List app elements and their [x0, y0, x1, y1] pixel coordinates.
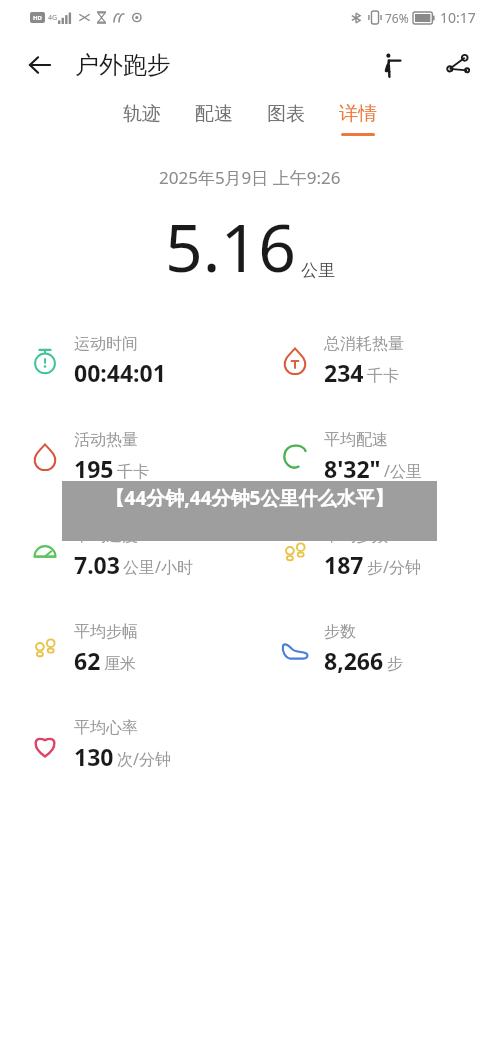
button[interactable]: Back	[18, 43, 62, 87]
staticText: 62	[74, 645, 101, 676]
staticText: 千卡	[117, 462, 149, 482]
staticText: 步	[387, 654, 403, 674]
button[interactable]: 图表	[250, 96, 322, 142]
staticText: 次/分钟	[117, 748, 171, 770]
staticText: 187	[324, 549, 364, 580]
staticText: 户外跑步	[75, 50, 171, 80]
staticText: 步/分钟	[367, 556, 421, 578]
staticText: 运动时间	[74, 334, 138, 354]
button[interactable]: 平均步频	[250, 505, 500, 601]
staticText: 7.03	[74, 549, 120, 580]
staticText: 公里/小时	[123, 556, 193, 578]
button[interactable]: 平均步幅	[0, 601, 250, 697]
staticText: 00:44:01	[74, 357, 166, 388]
staticText: 5.16	[165, 201, 296, 291]
staticText: 195	[74, 453, 114, 484]
staticText: 130	[74, 741, 114, 772]
staticText: 千卡	[367, 366, 399, 386]
button[interactable]: 运动时间	[0, 313, 250, 409]
staticText: 公里	[301, 260, 335, 281]
staticText: 详情	[339, 102, 377, 126]
staticText: 8,266	[324, 645, 384, 676]
button[interactable]: Activity	[370, 43, 414, 87]
button[interactable]: 平均配速	[250, 409, 500, 505]
staticText: 配速	[195, 102, 233, 126]
staticText: 4G	[48, 13, 58, 23]
staticText: HD	[33, 14, 42, 22]
staticText: 活动热量	[74, 430, 138, 450]
staticText: 步数	[324, 622, 356, 642]
staticText: 2025年5月9日 上午9:26	[159, 166, 341, 189]
button[interactable]: 轨迹	[106, 96, 178, 142]
staticText: 10:17	[440, 8, 476, 27]
staticText: 【44分钟,44分钟5公里什么水平】	[64, 485, 435, 511]
staticText: 平均心率	[74, 718, 138, 738]
button[interactable]: 平均心率	[0, 697, 250, 793]
staticText: 76%	[385, 10, 409, 26]
staticText: 轨迹	[123, 102, 161, 126]
staticText: 234	[324, 357, 364, 388]
staticText: 平均步频	[324, 526, 388, 546]
staticText: 8'32"	[324, 453, 381, 484]
staticText: 平均速度	[74, 526, 138, 546]
button[interactable]: 总消耗热量	[250, 313, 500, 409]
staticText: 平均配速	[324, 430, 388, 450]
staticText: 总消耗热量	[324, 334, 404, 354]
button[interactable]: 配速	[178, 96, 250, 142]
button[interactable]: 活动热量	[0, 409, 250, 505]
staticText: 厘米	[104, 654, 136, 674]
button[interactable]: 详情	[322, 96, 394, 142]
staticText: 平均步幅	[74, 622, 138, 642]
staticText: 图表	[267, 102, 305, 126]
button[interactable]: 平均速度	[0, 505, 250, 601]
staticText: /公里	[384, 460, 422, 482]
button[interactable]: 步数	[250, 601, 500, 697]
button[interactable]: Share	[436, 43, 480, 87]
